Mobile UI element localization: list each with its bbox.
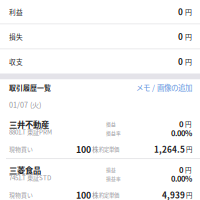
staticText: 100 xyxy=(76,145,91,153)
button[interactable]: 三菱食品 xyxy=(0,159,200,200)
staticText: 三菱食品 xyxy=(9,166,41,174)
staticText: 三井不動産 xyxy=(9,120,49,128)
button[interactable]: 三井不動産 xyxy=(0,113,200,158)
staticText: 損失 xyxy=(9,33,23,39)
button[interactable]: 利益 xyxy=(0,0,200,23)
staticText: 収支 xyxy=(9,58,23,64)
staticText: 約定単価 xyxy=(99,147,119,152)
staticText: 円 xyxy=(183,33,192,40)
staticText: 損益 xyxy=(106,122,116,126)
staticText: 0.00% xyxy=(171,175,192,182)
staticText: 1,264.5 xyxy=(154,145,185,153)
staticText: 円 xyxy=(185,146,192,152)
staticText: 0 xyxy=(179,166,184,173)
staticText: 01/07 (火) xyxy=(9,101,41,108)
button[interactable]: 収支 xyxy=(0,49,200,73)
staticText: 0 xyxy=(179,120,184,127)
staticText: 0 xyxy=(178,58,183,65)
staticText: 取引履歴一覧 xyxy=(9,84,51,91)
staticText: 7451.T 東証STD xyxy=(9,175,51,180)
staticText: 8801.T 東証PRM xyxy=(9,129,52,134)
staticText: 現物買い xyxy=(9,147,33,152)
staticText: 4,939 xyxy=(162,191,185,199)
button[interactable]: メモ / 画像の追加 xyxy=(136,84,192,91)
staticText: 0.00% xyxy=(171,129,192,136)
staticText: 株 xyxy=(91,192,99,198)
staticText: メモ / 画像の追加 xyxy=(136,84,192,91)
staticText: 損益率 xyxy=(106,131,121,135)
staticText: 損益 xyxy=(106,167,116,172)
button[interactable]: 損失 xyxy=(0,24,200,48)
staticText: 株 xyxy=(91,146,99,152)
staticText: 利益 xyxy=(9,9,23,15)
staticText: 0 xyxy=(178,33,183,40)
staticText: 損益率 xyxy=(106,176,121,181)
staticText: 0 xyxy=(178,8,183,15)
staticText: 円 xyxy=(183,58,192,65)
staticText: 100 xyxy=(76,191,91,199)
staticText: 現物買い xyxy=(9,192,33,198)
staticText: 円 xyxy=(183,9,192,15)
staticText: 約定単価 xyxy=(99,192,119,197)
staticText: 円 xyxy=(184,167,192,173)
staticText: 円 xyxy=(184,121,192,127)
staticText: 円 xyxy=(185,192,192,198)
